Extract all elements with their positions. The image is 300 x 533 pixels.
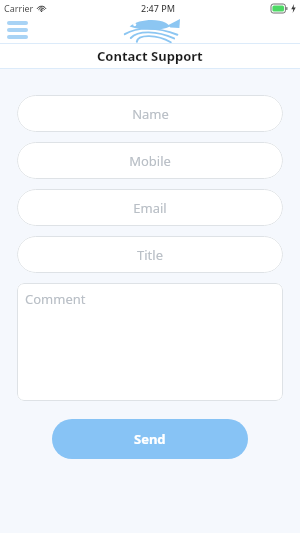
button[interactable]: Title [17,236,283,273]
staticText: 2:47 PM [141,2,175,14]
staticText: Carrier [4,2,34,14]
button[interactable]: Send [52,419,248,459]
staticText: Name [132,105,169,123]
staticText: Mobile [129,152,171,170]
button[interactable]: Email [17,189,283,226]
staticText: Comment [25,290,86,308]
button[interactable]: Name [17,95,283,132]
staticText: Email [133,199,167,217]
staticText: Send [134,430,166,448]
button[interactable]: Mobile [17,142,283,179]
staticText: Title [137,246,163,264]
button[interactable]: Comment [17,283,283,401]
staticText: Contact Support [97,47,203,65]
button[interactable]: Menu [0,16,34,43]
